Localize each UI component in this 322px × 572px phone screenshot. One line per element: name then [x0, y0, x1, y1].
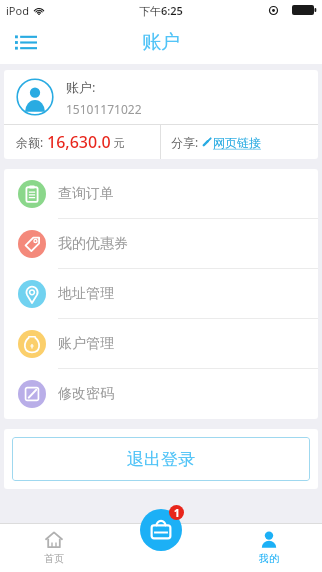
staticText: 我的	[259, 552, 279, 565]
staticText: 分享:	[171, 134, 199, 150]
button[interactable]: 地址管理	[4, 269, 318, 319]
button[interactable]: Cart	[140, 509, 182, 551]
staticText: 15101171022	[66, 101, 142, 117]
staticText: 查询订单	[58, 185, 114, 203]
button[interactable]: 余额:	[4, 125, 160, 159]
staticText: 下午6:25	[139, 3, 183, 18]
staticText: 1	[174, 506, 180, 520]
staticText: 余额:	[16, 134, 47, 150]
staticText: 退出登录	[127, 449, 195, 470]
staticText: 16,630.0	[47, 131, 111, 153]
button[interactable]: 退出登录	[12, 437, 310, 481]
button[interactable]: 分享:	[161, 125, 318, 159]
button[interactable]: 修改密码	[4, 369, 318, 419]
button[interactable]: Menu	[8, 24, 44, 60]
staticText: 元	[111, 135, 125, 150]
staticText: 账户管理	[58, 335, 114, 353]
button[interactable]: 账户管理	[4, 319, 318, 369]
staticText: 网页链接	[213, 135, 261, 150]
button[interactable]: 我的优惠券	[4, 219, 318, 269]
staticText: 地址管理	[58, 285, 114, 303]
button[interactable]: 我的	[215, 523, 322, 572]
staticText: 修改密码	[58, 385, 114, 403]
staticText: 账户	[142, 30, 180, 54]
staticText: 账户:	[66, 78, 96, 96]
button[interactable]: 账户:	[4, 70, 318, 124]
staticText: iPod	[6, 3, 29, 18]
staticText: 我的优惠券	[58, 235, 128, 253]
staticText: 首页	[44, 552, 64, 565]
button[interactable]: 查询订单	[4, 169, 318, 219]
button[interactable]: 首页	[0, 523, 108, 572]
